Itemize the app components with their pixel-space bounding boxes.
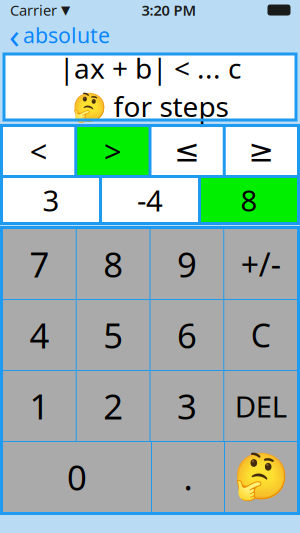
staticText: 3 — [177, 383, 197, 429]
button[interactable]: ‹ — [0, 22, 119, 48]
button[interactable]: C — [224, 300, 297, 370]
button[interactable]: -4 — [102, 178, 198, 222]
button[interactable]: ≤ — [151, 127, 223, 175]
button[interactable]: ≥ — [226, 127, 297, 175]
button[interactable]: 6 — [150, 300, 223, 370]
button[interactable]: 7 — [3, 229, 76, 299]
button[interactable]: 5 — [77, 300, 150, 370]
staticText: ‹ — [9, 12, 20, 58]
staticText: ≥ — [248, 134, 274, 168]
staticText: 🤔 for steps — [71, 87, 228, 125]
staticText: |ax + b| < ... c — [59, 49, 241, 86]
staticText: ▼ — [61, 3, 70, 17]
staticText: < — [30, 131, 48, 171]
staticText: ≤ — [174, 134, 200, 168]
button[interactable]: 0 — [3, 442, 151, 512]
staticText: 4 — [29, 312, 49, 358]
button[interactable]: Show steps — [225, 442, 297, 512]
staticText: > — [104, 131, 122, 171]
button[interactable]: 8 — [201, 178, 297, 222]
staticText: C — [251, 314, 271, 356]
button[interactable]: < — [3, 127, 74, 175]
button[interactable]: 4 — [3, 300, 76, 370]
staticText: 9 — [177, 241, 197, 287]
button[interactable]: 1 — [3, 371, 76, 441]
staticText: 3 — [42, 180, 59, 219]
button[interactable]: +/- — [224, 229, 297, 299]
staticText: +/- — [241, 243, 281, 285]
staticText: 7 — [29, 241, 49, 287]
button[interactable]: 8 — [77, 229, 150, 299]
staticText: 5 — [103, 312, 123, 358]
staticText: 3:20 PM — [141, 0, 196, 20]
button[interactable]: 3 — [3, 178, 99, 222]
staticText: absolute — [23, 21, 110, 49]
button[interactable]: 2 — [77, 371, 150, 441]
staticText: 🤔 — [233, 451, 289, 503]
staticText: -4 — [137, 180, 163, 219]
button[interactable]: > — [77, 127, 148, 175]
staticText: 8 — [103, 241, 123, 287]
button[interactable]: . — [152, 442, 224, 512]
button[interactable]: 9 — [150, 229, 223, 299]
staticText: . — [183, 454, 192, 500]
button[interactable]: DEL — [224, 371, 297, 441]
staticText: 2 — [103, 383, 123, 429]
staticText: 1 — [29, 383, 49, 429]
staticText: 0 — [67, 454, 87, 500]
staticText: DEL — [235, 386, 287, 425]
staticText: 6 — [177, 312, 197, 358]
button[interactable]: 3 — [150, 371, 223, 441]
staticText: Carrier — [10, 0, 57, 20]
staticText: 8 — [240, 180, 257, 219]
